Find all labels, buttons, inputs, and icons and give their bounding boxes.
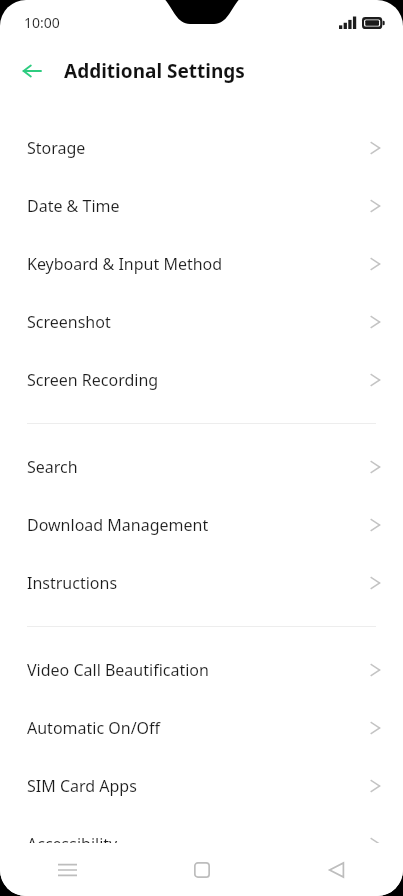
button[interactable]: Search: [0, 438, 403, 496]
staticText: Automatic On/Off: [27, 717, 370, 739]
button[interactable]: SIM Card Apps: [0, 757, 403, 815]
staticText: Screen Recording: [27, 369, 370, 391]
button[interactable]: Video Call Beautification: [0, 641, 403, 699]
button[interactable]: Keyboard & Input Method: [0, 235, 403, 293]
staticText: Screenshot: [27, 311, 370, 333]
button[interactable]: Download Management: [0, 496, 403, 554]
button[interactable]: Home: [135, 843, 269, 896]
staticText: Video Call Beautification: [27, 659, 370, 681]
button[interactable]: Instructions: [0, 554, 403, 612]
button[interactable]: Back: [14, 53, 50, 89]
staticText: Accessibility: [27, 833, 370, 855]
staticText: Search: [27, 456, 370, 478]
button[interactable]: Automatic On/Off: [0, 699, 403, 757]
button[interactable]: Recent apps: [0, 843, 135, 896]
button[interactable]: Accessibility: [0, 815, 403, 873]
button[interactable]: Screen Recording: [0, 351, 403, 409]
staticText: SIM Card Apps: [27, 775, 370, 797]
button[interactable]: Date & Time: [0, 177, 403, 235]
staticText: 10:00: [24, 13, 60, 32]
button[interactable]: Back: [269, 843, 403, 896]
staticText: Keyboard & Input Method: [27, 253, 370, 275]
staticText: Date & Time: [27, 195, 370, 217]
staticText: Download Management: [27, 514, 370, 536]
button[interactable]: Storage: [0, 119, 403, 177]
staticText: Storage: [27, 137, 370, 159]
staticText: Additional Settings: [64, 58, 245, 84]
button[interactable]: Screenshot: [0, 293, 403, 351]
staticText: Instructions: [27, 572, 370, 594]
